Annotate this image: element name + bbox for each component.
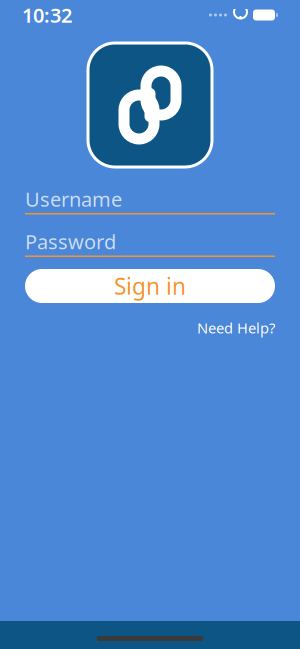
staticText: Need Help? <box>197 318 275 337</box>
staticText: Username <box>25 186 122 212</box>
staticText: 10:32 <box>22 2 72 28</box>
button[interactable]: Sign in <box>25 269 275 303</box>
staticText: Sign in <box>114 271 186 301</box>
button[interactable]: Need Help? <box>197 314 275 341</box>
staticText: Password <box>25 228 116 255</box>
